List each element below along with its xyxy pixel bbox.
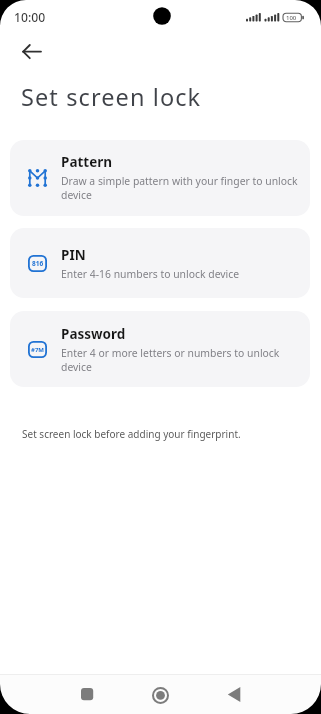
button[interactable]: 816 bbox=[10, 228, 310, 298]
staticText: 816 bbox=[32, 259, 44, 268]
staticText: Enter 4 or more letters or numbers to un… bbox=[61, 346, 280, 374]
button[interactable]: #7M bbox=[10, 311, 310, 387]
button[interactable]: Pattern bbox=[10, 140, 310, 216]
button[interactable] bbox=[213, 680, 255, 710]
button[interactable] bbox=[139, 680, 181, 710]
staticText: Pattern bbox=[61, 153, 113, 171]
staticText: #7M bbox=[31, 346, 44, 354]
staticText: PIN bbox=[61, 246, 86, 264]
staticText: 10:00 bbox=[14, 9, 46, 26]
button[interactable] bbox=[67, 680, 109, 710]
button[interactable] bbox=[16, 40, 48, 64]
staticText: Draw a simple pattern with your finger t… bbox=[61, 174, 298, 202]
staticText: 100 bbox=[286, 14, 297, 22]
staticText: Set screen lock before adding your finge… bbox=[22, 427, 241, 441]
staticText: Enter 4-16 numbers to unlock device bbox=[61, 267, 240, 281]
staticText: Password bbox=[61, 325, 126, 343]
staticText: Set screen lock bbox=[21, 81, 202, 113]
